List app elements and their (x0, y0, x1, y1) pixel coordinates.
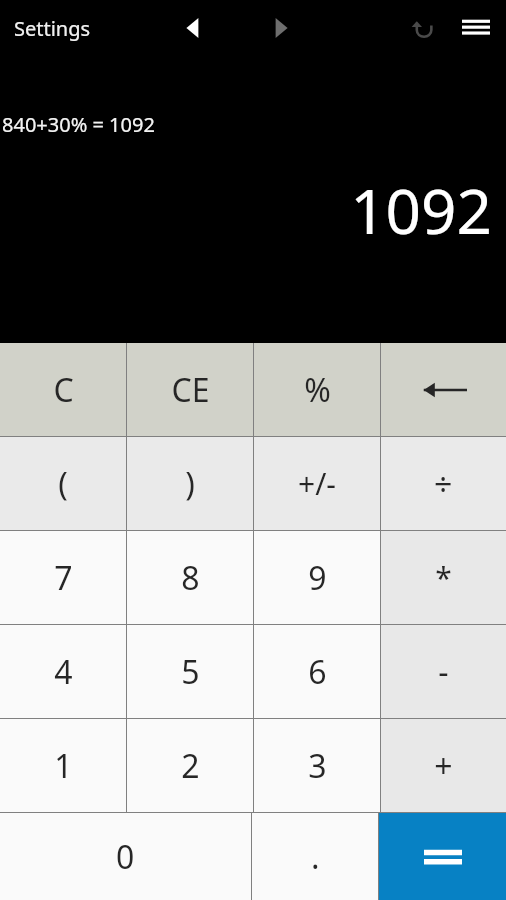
button[interactable]: Previous (172, 6, 216, 50)
button[interactable]: Settings (10, 9, 95, 48)
button[interactable]: Menu (452, 4, 500, 52)
staticText: 3 (308, 744, 327, 788)
button[interactable]: + (381, 719, 506, 812)
button[interactable]: . (252, 813, 378, 900)
staticText: 8 (181, 556, 200, 600)
button[interactable]: ÷ (381, 437, 506, 530)
button[interactable]: 7 (0, 531, 126, 624)
staticText: - (438, 650, 449, 694)
button[interactable]: * (381, 531, 506, 624)
staticText: ÷ (434, 462, 453, 506)
staticText: CE (171, 368, 210, 412)
staticText: 2 (181, 744, 200, 788)
staticText: . (311, 835, 320, 879)
button[interactable]: 1 (0, 719, 126, 812)
button[interactable]: 4 (0, 625, 126, 718)
button[interactable]: % (254, 343, 380, 436)
button[interactable]: 6 (254, 625, 380, 718)
staticText: Settings (14, 15, 91, 42)
staticText: 7 (54, 556, 73, 600)
staticText: ( (58, 462, 68, 506)
staticText: 9 (308, 556, 327, 600)
staticText: 840+30% = 1092 (2, 111, 155, 138)
button[interactable]: CE (127, 343, 253, 436)
button[interactable]: 8 (127, 531, 253, 624)
button[interactable]: Backspace (381, 343, 506, 436)
staticText: 5 (181, 650, 200, 694)
button[interactable]: Equals (379, 813, 506, 900)
button[interactable]: - (381, 625, 506, 718)
staticText: + (434, 744, 453, 788)
staticText: 4 (54, 650, 73, 694)
staticText: +/- (298, 463, 336, 504)
staticText: 6 (308, 650, 327, 694)
staticText: 0 (116, 835, 135, 879)
button[interactable]: 2 (127, 719, 253, 812)
button[interactable]: 5 (127, 625, 253, 718)
staticText: % (304, 368, 331, 412)
button[interactable]: ) (127, 437, 253, 530)
button[interactable]: 3 (254, 719, 380, 812)
button[interactable]: C (0, 343, 126, 436)
button[interactable]: Next (258, 6, 302, 50)
button[interactable]: 9 (254, 531, 380, 624)
staticText: * (435, 557, 452, 598)
button[interactable]: 0 (0, 813, 251, 900)
staticText: 1092 (350, 168, 492, 252)
staticText: C (53, 368, 74, 412)
staticText: 1 (54, 744, 73, 788)
button[interactable]: Undo (398, 4, 446, 52)
button[interactable]: +/- (254, 437, 380, 530)
button[interactable]: ( (0, 437, 126, 530)
staticText: ) (185, 462, 195, 506)
